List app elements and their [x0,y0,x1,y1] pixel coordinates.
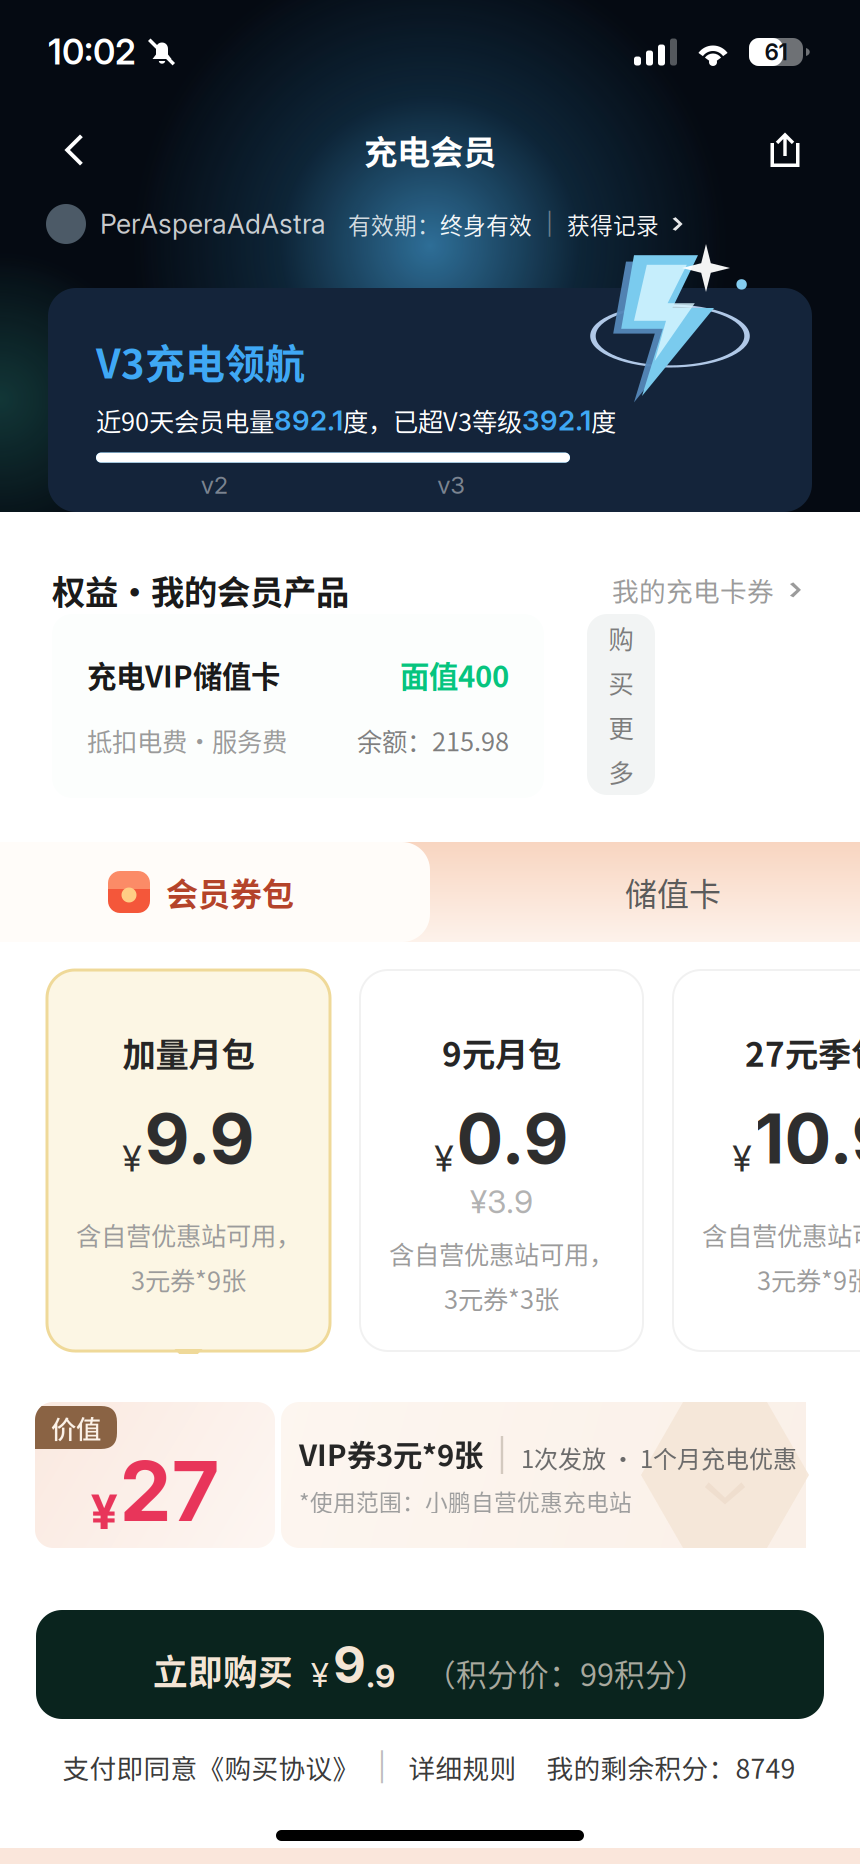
staticText: 获得记录 [567,208,659,240]
staticText: 立即购买 [153,1645,293,1695]
staticText: 3元券*3张 [444,1280,559,1316]
button[interactable]: 9元月包 [360,970,643,1351]
staticText: 储值卡 [625,869,721,915]
button[interactable]: Share [746,111,824,189]
staticText: 会员券包 [166,869,294,915]
staticText: 余额：215.98 [357,722,509,759]
staticText: V3充电领航 [96,332,305,390]
button[interactable]: PerAsperaAdAstra [0,196,860,252]
staticText: 充电会员 [364,126,496,174]
staticText: 多 [608,753,633,790]
staticText: 近90天会员电量 [96,402,274,439]
staticText: 支付即同意 [62,1748,197,1786]
staticText: PerAsperaAdAstra [100,208,326,240]
button[interactable]: 充电VIP储值卡 [52,614,544,798]
staticText: 面值400 [400,653,509,696]
staticText: 3元券*9张 [131,1261,246,1297]
button[interactable]: 加量月包 [47,970,330,1351]
staticText: 9元月包 [442,1028,561,1076]
staticText: 含自营优惠站可用， [76,1216,301,1253]
staticText: 892.1 [274,403,343,437]
staticText: 9 [333,1634,366,1695]
staticText: ¥3.9 [470,1182,533,1221]
staticText: | [377,1750,386,1784]
staticText: 392.1 [522,403,591,437]
staticText: 终身有效 [440,208,532,240]
button[interactable]: 立即购买 [0,1610,824,1719]
staticText: 度 [591,402,616,439]
staticText: | [497,1436,507,1475]
staticText: 61 [764,38,787,66]
staticText: 详细规则 [408,1748,516,1786]
staticText: 加量月包 [122,1028,254,1076]
staticText: ¥ [122,1137,141,1180]
button[interactable]: 购 [587,614,655,795]
button[interactable]: 《购买协议》 [197,1748,359,1786]
staticText: （积分价：99积分） [425,1651,707,1695]
staticText: 购 [608,619,633,656]
staticText: ¥ [311,1655,329,1695]
staticText: 27 [119,1441,219,1541]
staticText: 我的充电卡券 [612,571,774,609]
staticText: 度，已超V3等级 [343,402,522,439]
staticText: 含自营优惠站可用， [389,1235,614,1272]
staticText: 有效期： [348,208,440,240]
staticText: 27元季包 [745,1028,860,1076]
staticText: 我的剩余积分：8749 [546,1748,795,1786]
staticText: ¥ [732,1137,751,1180]
button[interactable]: 27元季包 [673,970,860,1351]
button[interactable]: Back [36,111,110,189]
staticText: ¥ [90,1483,117,1541]
staticText: v3 [437,471,465,500]
staticText: 9.9 [144,1096,254,1180]
staticText: 10:02 [48,31,136,73]
staticText: 价值 [51,1409,101,1446]
button[interactable]: 详细规则 [408,1748,516,1786]
staticText: 权益·我的会员产品 [52,566,349,614]
staticText: *使用范围：小鹏自营优惠充电站 [299,1485,632,1518]
staticText: | [546,211,553,237]
staticText: v2 [201,471,228,500]
staticText: 抵扣电费·服务费 [87,722,287,759]
staticText: ¥ [434,1137,453,1180]
staticText: 0.9 [456,1096,568,1180]
staticText: VIP券3元*9张 [299,1432,483,1475]
staticText: 含自营优惠站可用， [702,1216,860,1253]
staticText: .9 [366,1656,395,1695]
button[interactable]: 储值卡 [458,842,860,942]
button[interactable]: 会员券包 [0,842,458,942]
button[interactable]: 我的充电卡券 [612,571,808,609]
staticText: 更 [608,708,633,745]
staticText: 买 [608,664,633,700]
staticText: 1次发放 · 1个月充电优惠 [521,1440,797,1475]
staticText: 10.9 [754,1096,860,1180]
staticText: 充电VIP储值卡 [87,653,280,696]
staticText: 《购买协议》 [197,1748,359,1786]
staticText: 3元券*9张 [757,1261,860,1297]
